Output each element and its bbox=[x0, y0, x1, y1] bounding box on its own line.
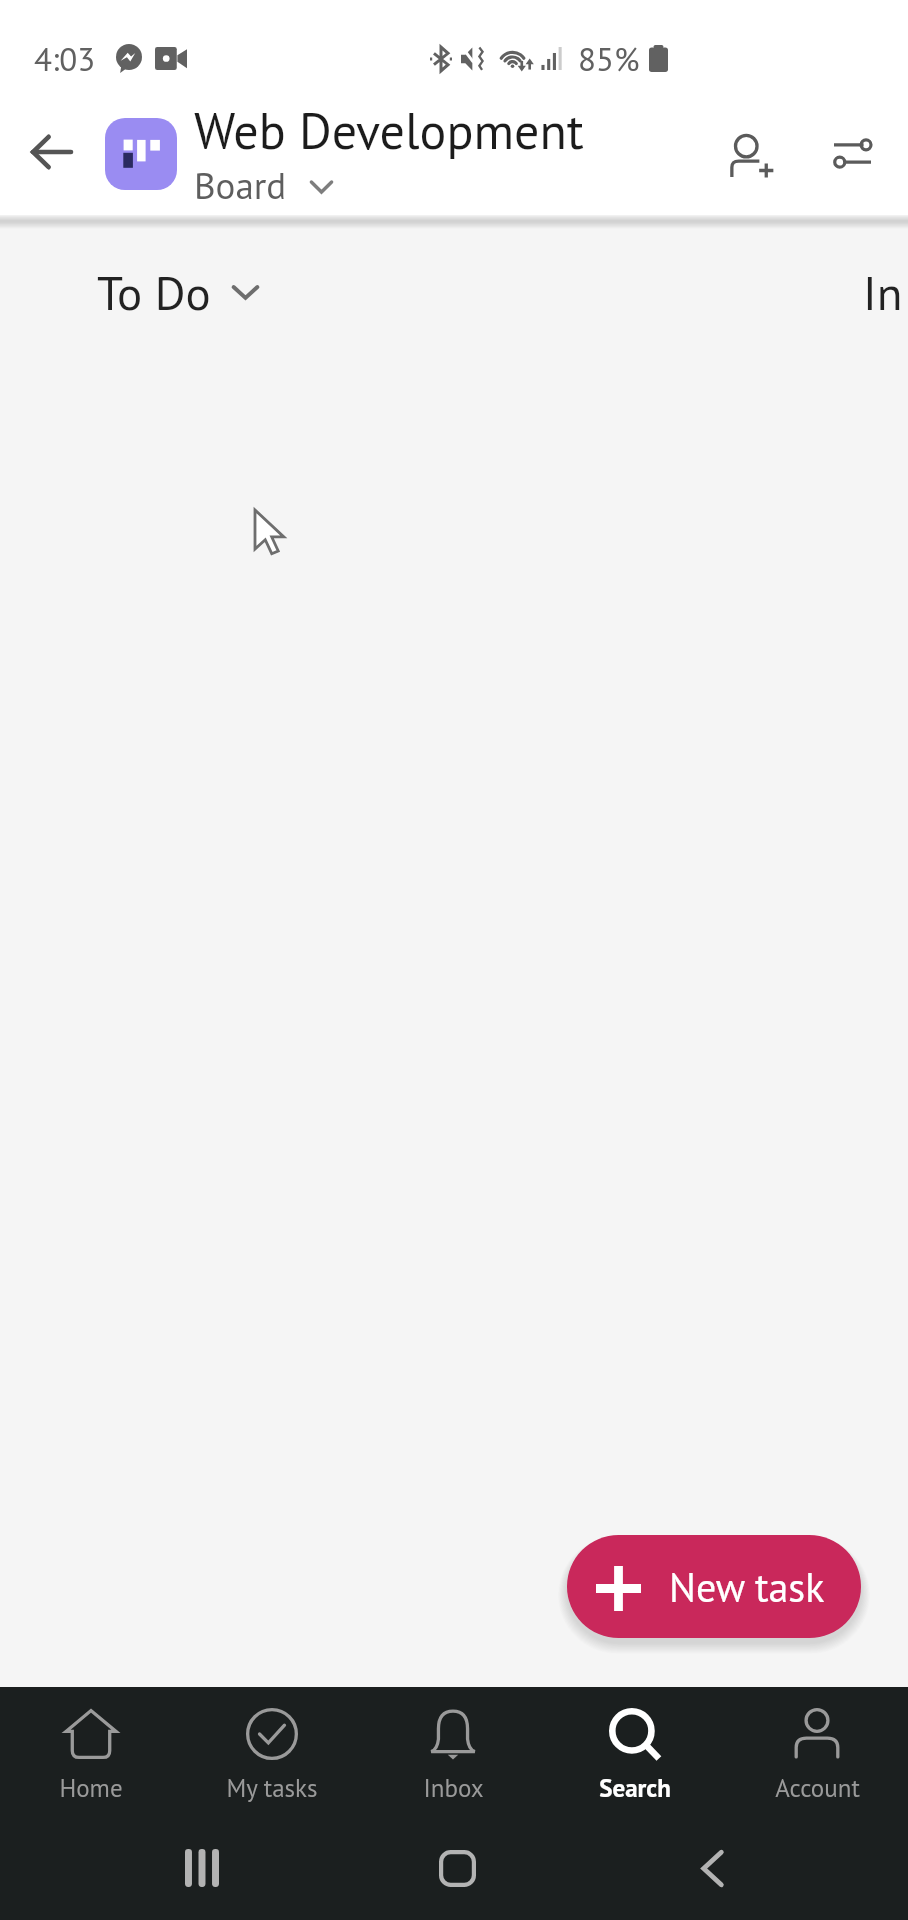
staticText: Board bbox=[194, 161, 287, 200]
button[interactable]: Filter bbox=[806, 107, 898, 199]
button[interactable]: To Do bbox=[97, 262, 259, 323]
button[interactable]: Add member bbox=[706, 110, 798, 202]
button[interactable]: Home bbox=[415, 1826, 499, 1910]
staticText: 85% bbox=[578, 37, 640, 80]
button[interactable]: Recents bbox=[160, 1826, 244, 1910]
button[interactable]: Account bbox=[726, 1687, 908, 1827]
staticText: Home bbox=[59, 1772, 123, 1804]
staticText: Inbox bbox=[423, 1772, 484, 1804]
button[interactable]: New task bbox=[567, 1535, 861, 1638]
button[interactable]: Board bbox=[194, 161, 333, 200]
staticText: Web Development bbox=[194, 98, 584, 163]
staticText: My tasks bbox=[226, 1772, 318, 1804]
button[interactable]: Back bbox=[670, 1826, 754, 1910]
button[interactable]: Search bbox=[544, 1687, 726, 1827]
staticText: Search bbox=[599, 1772, 671, 1804]
button[interactable]: Back bbox=[8, 108, 96, 196]
staticText: 4:03 bbox=[34, 37, 96, 80]
staticText: New task bbox=[669, 1561, 825, 1613]
button[interactable]: Home bbox=[0, 1687, 181, 1827]
staticText: Account bbox=[775, 1772, 860, 1804]
button[interactable]: Inbox bbox=[362, 1687, 544, 1827]
button[interactable]: In bbox=[863, 262, 903, 323]
staticText: To Do bbox=[97, 262, 211, 323]
button[interactable]: My tasks bbox=[181, 1687, 362, 1827]
